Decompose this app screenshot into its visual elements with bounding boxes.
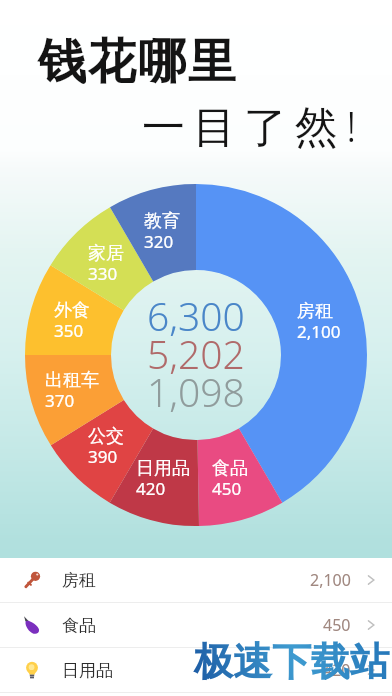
button[interactable]: 日用品 — [0, 648, 392, 692]
staticText: 日用品 — [62, 660, 113, 681]
staticText: 食品 — [212, 457, 248, 480]
staticText: 2,100 — [297, 320, 341, 343]
staticText: 420 — [323, 659, 351, 681]
staticText: 390 — [88, 445, 118, 468]
button[interactable]: 食品 — [0, 603, 392, 647]
staticText: 房租 — [62, 570, 96, 591]
staticText: 房租 — [297, 300, 333, 323]
staticText: 公交 — [88, 425, 124, 448]
staticText: 5,202 — [147, 327, 245, 380]
staticText: 1,098 — [147, 365, 245, 418]
staticText: 教育 — [144, 210, 180, 233]
staticText: 出租车 — [45, 369, 99, 392]
staticText: 6,300 — [147, 289, 245, 342]
staticText: 日用品 — [136, 457, 190, 480]
staticText: 食品 — [62, 615, 96, 636]
staticText: 370 — [45, 389, 75, 412]
button[interactable]: 房租 — [0, 558, 392, 602]
staticText: 外食 — [54, 299, 90, 322]
staticText: 420 — [136, 477, 166, 500]
staticText: 2,100 — [310, 569, 351, 591]
staticText: 320 — [144, 230, 174, 253]
staticText: 一目了然! — [142, 96, 365, 155]
staticText: 钱花哪里 — [37, 32, 237, 92]
staticText: 450 — [323, 614, 351, 636]
staticText: 330 — [88, 262, 118, 285]
staticText: 极速下载站 — [194, 637, 389, 686]
staticText: 350 — [54, 319, 84, 342]
staticText: 家居 — [88, 242, 124, 265]
staticText: 450 — [212, 477, 242, 500]
